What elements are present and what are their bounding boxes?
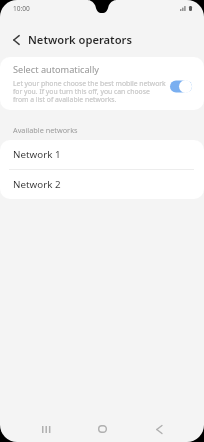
button[interactable]: Network 2 xyxy=(0,170,204,199)
staticText: Network 2 xyxy=(13,178,61,191)
staticText: Available networks xyxy=(13,125,78,135)
button[interactable]: Network 1 xyxy=(0,140,204,169)
button[interactable]: Home xyxy=(85,416,119,442)
staticText: Network operators xyxy=(28,32,132,47)
staticText: 10:00 xyxy=(13,4,30,13)
button[interactable]: Select automatically xyxy=(170,80,192,93)
button[interactable]: Navigate up xyxy=(0,27,29,53)
staticText: Network 1 xyxy=(13,148,61,161)
staticText: Let your phone choose the best mobile ne… xyxy=(13,79,166,104)
button[interactable]: Back xyxy=(142,416,176,442)
staticText: Select automatically xyxy=(13,63,100,76)
button[interactable]: Recent apps xyxy=(29,416,63,442)
button[interactable]: Select automatically xyxy=(0,57,204,110)
